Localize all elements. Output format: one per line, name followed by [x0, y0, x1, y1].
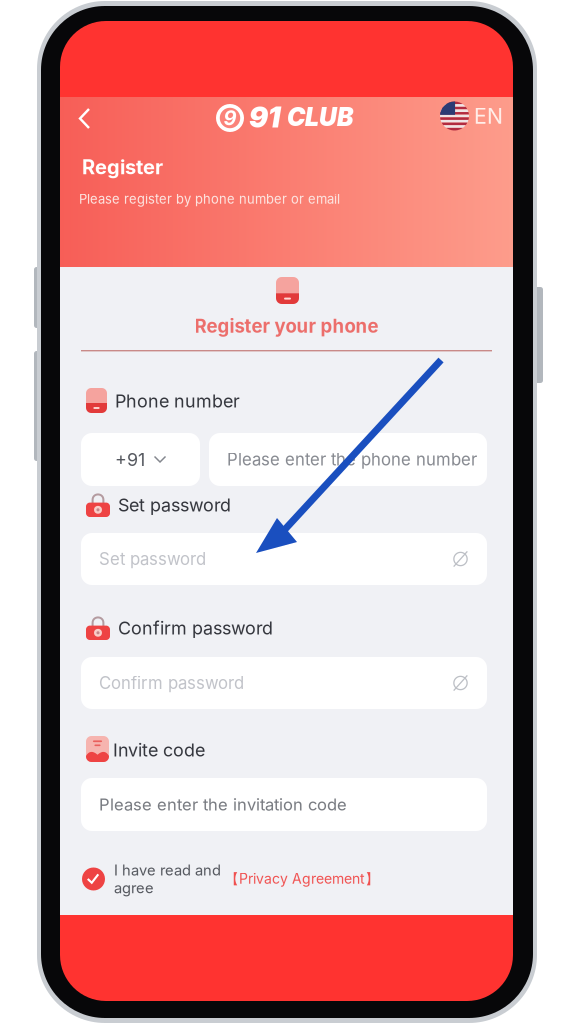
staticText: +91	[115, 449, 145, 470]
staticText: Register	[82, 155, 163, 179]
button[interactable]: Set password	[81, 533, 487, 585]
button[interactable]: I have read and agree	[82, 866, 422, 892]
staticText: 91	[249, 100, 281, 134]
button[interactable]: Confirm password	[81, 657, 487, 709]
staticText: Please enter the phone number	[227, 449, 477, 470]
staticText: CLUB	[287, 102, 353, 132]
staticText: Please register by phone number or email	[79, 191, 340, 207]
staticText: Register your phone	[194, 315, 378, 337]
staticText: Please enter the invitation code	[99, 794, 347, 814]
button[interactable]: Language EN	[440, 101, 520, 131]
staticText: Set password	[118, 494, 231, 516]
button[interactable]: Country code +91	[81, 433, 200, 486]
button[interactable]: Phone number	[209, 433, 487, 486]
staticText: Confirm password	[118, 617, 273, 639]
button[interactable]: Invite code	[81, 778, 487, 831]
staticText: Set password	[99, 549, 206, 569]
staticText: Invite code	[113, 739, 205, 761]
button[interactable]: Back	[62, 97, 108, 141]
staticText: I have read and agree	[114, 861, 221, 897]
staticText: EN	[474, 103, 503, 129]
staticText: 9	[223, 106, 236, 130]
staticText: Phone number	[115, 390, 240, 412]
staticText: Confirm password	[99, 673, 244, 693]
staticText: 【Privacy Agreement】	[225, 870, 379, 888]
